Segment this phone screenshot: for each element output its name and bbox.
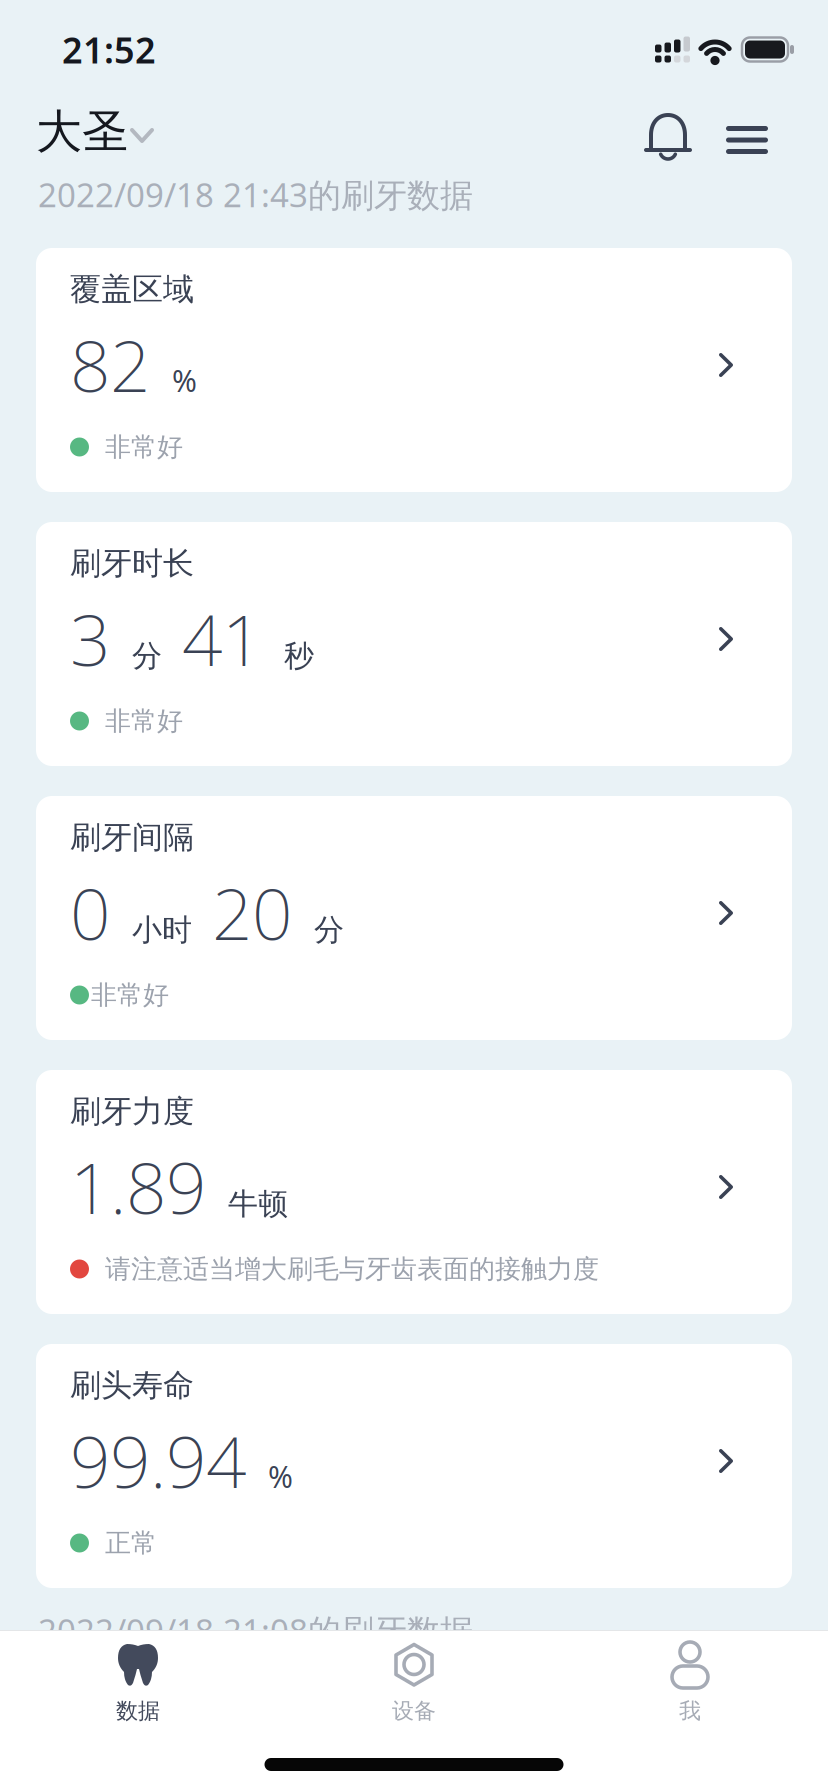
staticText: 非常好: [105, 705, 183, 737]
staticText: 分: [132, 637, 162, 675]
staticText: 数据: [116, 1697, 160, 1725]
staticText: 刷牙时长: [70, 544, 194, 583]
button[interactable]: Menu: [726, 110, 768, 154]
staticText: 2022/09/18 21:08的刷牙数据: [38, 1608, 473, 1653]
button[interactable]: 我: [552, 1630, 828, 1728]
staticText: 大圣: [36, 103, 128, 161]
staticText: 设备: [392, 1697, 436, 1725]
staticText: %: [172, 360, 197, 401]
staticText: 1.89: [70, 1138, 206, 1235]
staticText: 分: [314, 911, 344, 949]
button[interactable]: 刷牙间隔: [36, 796, 792, 1040]
staticText: 刷头寿命: [70, 1366, 194, 1405]
staticText: 秒: [284, 637, 314, 675]
staticText: 21:52: [62, 25, 156, 74]
staticText: 小时: [132, 911, 192, 949]
staticText: 刷牙力度: [70, 1092, 194, 1131]
button[interactable]: 数据: [0, 1630, 276, 1728]
button[interactable]: 覆盖区域: [36, 248, 792, 492]
staticText: 我: [679, 1697, 701, 1725]
staticText: 非常好: [91, 979, 169, 1011]
staticText: 41: [182, 590, 262, 687]
staticText: 覆盖区域: [70, 270, 194, 309]
button[interactable]: Notifications: [644, 104, 692, 160]
button[interactable]: 刷头寿命: [36, 1344, 792, 1588]
staticText: 刷牙间隔: [70, 818, 194, 857]
button[interactable]: 大圣: [36, 103, 154, 161]
button[interactable]: 设备: [276, 1630, 552, 1728]
staticText: 牛顿: [228, 1185, 288, 1223]
staticText: 20: [212, 864, 292, 961]
staticText: 99.94: [70, 1412, 246, 1509]
staticText: %: [268, 1456, 293, 1497]
staticText: 请注意适当增大刷毛与牙齿表面的接触力度: [105, 1253, 599, 1285]
staticText: 3: [70, 590, 110, 687]
staticText: 2022/09/18 21:43的刷牙数据: [38, 172, 473, 217]
staticText: 0: [70, 864, 110, 961]
staticText: 正常: [105, 1527, 157, 1559]
button[interactable]: 刷牙时长: [36, 522, 792, 766]
button[interactable]: 刷牙力度: [36, 1070, 792, 1314]
staticText: 82: [70, 316, 150, 413]
staticText: 非常好: [105, 431, 183, 463]
